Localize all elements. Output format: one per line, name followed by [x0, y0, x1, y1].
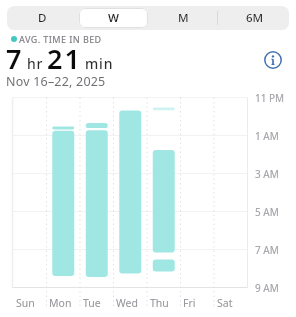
button[interactable]	[263, 50, 283, 70]
staticText: Tue	[83, 296, 101, 310]
staticText: Nov 16–22, 2025	[6, 73, 106, 90]
staticText: 11 PM	[255, 91, 285, 105]
staticText: Wed	[116, 296, 138, 310]
button[interactable]: W	[78, 6, 149, 30]
staticText: 5 AM	[255, 205, 279, 219]
staticText: 9 AM	[255, 281, 279, 295]
button[interactable]: M	[148, 6, 219, 30]
staticText: Thu	[150, 296, 169, 310]
staticText: Mon	[49, 296, 72, 310]
staticText: W	[108, 10, 119, 26]
staticText: hr	[27, 54, 44, 73]
staticText: 7 AM	[255, 243, 279, 257]
staticText: Fri	[183, 296, 196, 310]
staticText: 6M	[246, 10, 264, 26]
staticText: M	[178, 10, 189, 26]
button[interactable]: D	[7, 6, 78, 30]
staticText: Sat	[217, 296, 233, 310]
button[interactable]: 6M	[219, 6, 290, 30]
staticText: D	[38, 10, 47, 26]
staticText: Sun	[16, 296, 35, 310]
staticText: min	[85, 54, 114, 73]
staticText: 21	[47, 40, 82, 77]
staticText: AVG. TIME IN BED	[19, 33, 102, 45]
staticText: 1 AM	[255, 129, 279, 143]
staticText: 3 AM	[255, 167, 279, 181]
staticText: 7	[6, 40, 22, 77]
